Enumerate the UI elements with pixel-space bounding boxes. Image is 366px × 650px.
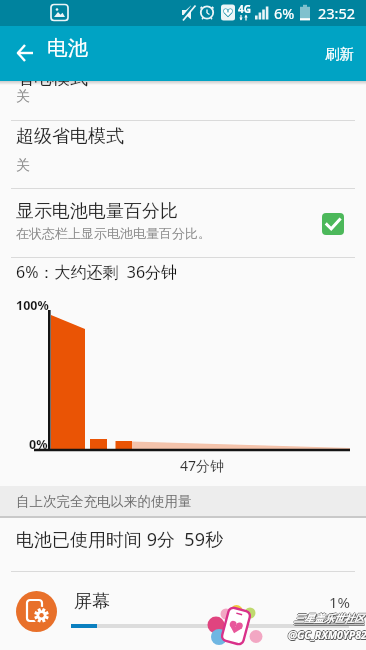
button[interactable] [0, 188, 366, 257]
staticText: 自上次完全充电以来的使用量 [16, 493, 192, 510]
button[interactable] [0, 518, 366, 571]
staticText: 三星盖乐世社区 [295, 613, 365, 626]
staticText: 关 [16, 88, 30, 106]
button[interactable] [0, 572, 366, 650]
staticText: 屏幕 [74, 590, 110, 613]
staticText: @GC_RXM0YP82 [287, 628, 366, 642]
staticText: 电池 [47, 35, 88, 61]
staticText: 23:52 [318, 3, 356, 23]
staticText: 4G [238, 2, 251, 16]
staticText: 电池已使用时间 9分 59秒 [16, 527, 223, 552]
staticText: 6%：大约还剩 36分钟 [16, 261, 178, 283]
staticText: 在状态栏上显示电池电量百分比。 [16, 225, 211, 241]
button[interactable]: 刷新 [317, 36, 362, 72]
staticText: 显示电池电量百分比 [16, 200, 178, 223]
staticText: @GC_RXM0YP82 [289, 628, 366, 642]
button[interactable] [0, 120, 366, 188]
staticText: 三星盖乐世社区 [293, 612, 363, 625]
staticText: 关 [16, 157, 30, 175]
staticText: 刷新 [325, 45, 354, 63]
button[interactable] [0, 81, 366, 120]
button[interactable] [322, 213, 344, 235]
staticText: 100% [16, 297, 49, 314]
staticText: 三星盖乐世社区 [294, 613, 364, 626]
staticText: @GC_RXM0YP82 [288, 628, 366, 642]
staticText: 三星盖乐世社区 [294, 612, 364, 625]
staticText: @GC_RXM0YP82 [289, 629, 366, 643]
staticText: 省电模式 [16, 67, 88, 90]
staticText: 0% [29, 436, 48, 453]
staticText: 6% [274, 3, 295, 23]
button[interactable] [8, 36, 42, 70]
staticText: 超级省电模式 [16, 125, 124, 148]
staticText: @GC_RXM0YP82 [288, 629, 366, 643]
staticText: 三星盖乐世社区 [294, 611, 364, 624]
staticText: 1% [329, 592, 351, 612]
staticText: 47分钟 [180, 456, 225, 475]
staticText: @GC_RXM0YP82 [288, 627, 366, 641]
staticText: 三星盖乐世社区 [295, 612, 365, 625]
